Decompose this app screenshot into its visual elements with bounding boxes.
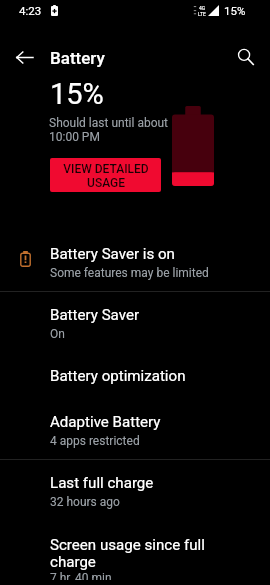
staticText: Screen usage since full charge bbox=[50, 536, 212, 571]
button[interactable]: Back bbox=[8, 47, 40, 67]
staticText: Battery Saver bbox=[50, 306, 140, 324]
staticText: Battery bbox=[50, 48, 105, 68]
staticText: 15% bbox=[50, 77, 104, 111]
staticText: 15% bbox=[224, 4, 246, 17]
button[interactable]: Battery optimization bbox=[0, 355, 270, 401]
button[interactable]: Screen usage since full charge bbox=[0, 524, 270, 580]
staticText: Battery optimization bbox=[50, 367, 186, 385]
staticText: 7 hr, 40 min bbox=[50, 571, 112, 580]
staticText: Should last until about 10:00 PM bbox=[49, 116, 169, 144]
staticText: 4:23 bbox=[19, 4, 42, 17]
staticText: Adaptive Battery bbox=[50, 413, 161, 431]
staticText: Battery Saver is on bbox=[50, 245, 175, 263]
staticText: 32 hours ago bbox=[50, 495, 120, 509]
staticText: VIEW DETAILED USAGE bbox=[63, 162, 149, 190]
staticText: On bbox=[50, 327, 65, 341]
button[interactable]: Battery Saver bbox=[0, 294, 270, 349]
staticText: 4 apps restricted bbox=[50, 434, 140, 448]
staticText: LTE bbox=[198, 11, 206, 17]
button[interactable]: VIEW DETAILED USAGE bbox=[50, 158, 161, 192]
staticText: Some features may be limited bbox=[50, 266, 209, 280]
staticText: Last full charge bbox=[50, 474, 154, 492]
button[interactable]: Search bbox=[231, 47, 261, 67]
button[interactable]: Battery Saver is on bbox=[0, 231, 270, 293]
button[interactable]: Adaptive Battery bbox=[0, 401, 270, 456]
button[interactable]: Last full charge bbox=[0, 462, 270, 517]
staticText: 4G bbox=[199, 5, 206, 11]
